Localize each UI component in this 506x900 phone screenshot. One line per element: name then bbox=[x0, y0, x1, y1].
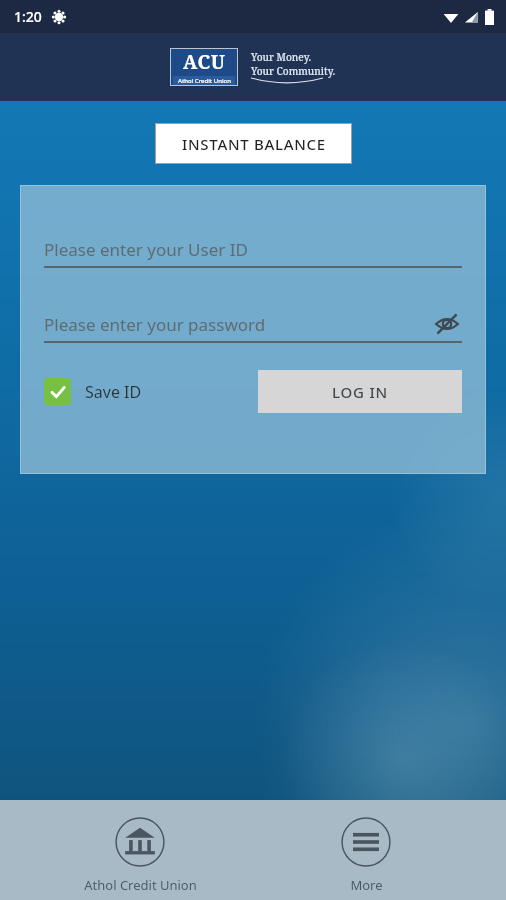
staticText: Your Community. bbox=[251, 64, 336, 78]
staticText: Athol Credit Union bbox=[84, 876, 197, 894]
button[interactable]: Please enter your password bbox=[44, 307, 462, 341]
staticText: Save ID bbox=[85, 381, 142, 403]
staticText: Your Money. bbox=[251, 50, 312, 64]
staticText: LOG IN bbox=[332, 382, 389, 402]
button[interactable]: INSTANT BALANCE bbox=[155, 123, 352, 164]
staticText: Please enter your password bbox=[44, 313, 266, 336]
staticText: 1:20 bbox=[14, 7, 42, 26]
button[interactable]: Please enter your User ID bbox=[44, 232, 462, 266]
staticText: ACU bbox=[183, 49, 226, 75]
other: More bbox=[340, 816, 392, 868]
staticText: Please enter your User ID bbox=[44, 238, 248, 261]
button[interactable]: LOG IN bbox=[258, 370, 462, 413]
button[interactable]: Show password bbox=[432, 309, 462, 339]
staticText: INSTANT BALANCE bbox=[182, 134, 326, 154]
button[interactable]: More bbox=[281, 812, 451, 898]
other: Athol Credit Union bbox=[114, 816, 166, 868]
button[interactable]: Save ID bbox=[44, 378, 142, 405]
staticText: Athol Credit Union bbox=[178, 77, 231, 85]
staticText: More bbox=[350, 876, 383, 894]
button[interactable]: Athol Credit Union bbox=[55, 812, 225, 898]
